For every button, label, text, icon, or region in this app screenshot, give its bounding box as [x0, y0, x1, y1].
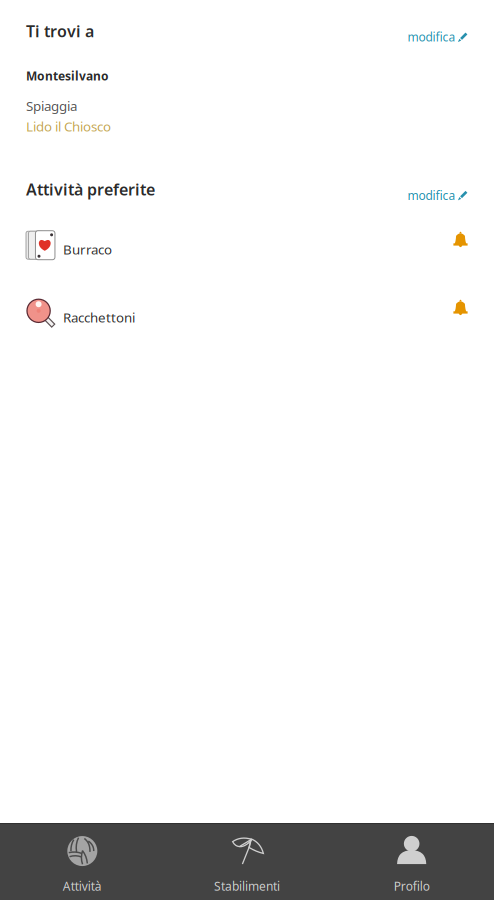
button[interactable]: Profilo — [329, 823, 494, 900]
staticText: Lido il Chiosco — [26, 118, 111, 135]
staticText: Attività preferite — [26, 179, 155, 200]
staticText: Spiaggia — [26, 97, 77, 115]
button[interactable]: Notifiche Racchettoni — [453, 279, 494, 347]
button[interactable]: Racchettoni — [0, 279, 453, 347]
staticText: Racchettoni — [63, 308, 135, 326]
button[interactable]: Attività — [0, 823, 165, 900]
button[interactable]: Burraco — [0, 211, 453, 279]
staticText: Burraco — [63, 240, 112, 258]
staticText: Ti trovi a — [26, 20, 94, 41]
button[interactable]: Stabilimenti — [165, 823, 329, 900]
button[interactable]: Notifiche Burraco — [453, 211, 494, 279]
staticText: Montesilvano — [26, 68, 109, 84]
staticText: Attività — [63, 878, 102, 894]
staticText: Profilo — [394, 878, 430, 894]
button[interactable]: modifica — [397, 175, 468, 203]
staticText: Stabilimenti — [214, 878, 280, 894]
staticText: modifica — [407, 29, 455, 45]
button[interactable]: modifica — [397, 17, 468, 45]
button[interactable]: Montesilvano — [0, 68, 494, 135]
staticText: modifica — [407, 187, 455, 203]
